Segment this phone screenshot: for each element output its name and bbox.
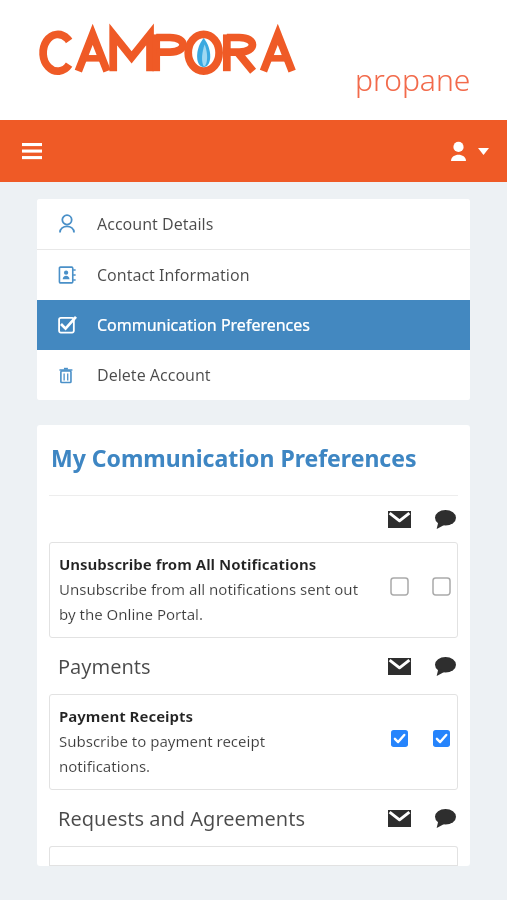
button[interactable]: Menu [10, 129, 54, 173]
staticText: Contact Information [97, 264, 250, 286]
button[interactable]: Text notifications [435, 657, 456, 676]
staticText: propane [355, 59, 471, 100]
staticText: My Communication Preferences [51, 442, 417, 473]
button[interactable]: Unsubscribe from All Notifications text [433, 578, 450, 595]
button[interactable]: Payment Receipts email [391, 730, 408, 747]
staticText: Communication Preferences [97, 314, 310, 336]
button[interactable]: Account Details [37, 199, 470, 249]
staticText: Requests and Agreements [58, 805, 305, 832]
button[interactable]: Contact Information [37, 250, 470, 300]
button[interactable]: Email notifications [388, 511, 411, 528]
button[interactable]: Text notifications [435, 510, 456, 529]
button[interactable]: Unsubscribe from All Notifications email [391, 578, 408, 595]
button[interactable]: Payment Receipts text [433, 730, 450, 747]
button[interactable]: Email notifications [388, 658, 411, 675]
staticText: Account Details [97, 213, 214, 235]
button[interactable]: Delete Account [37, 350, 470, 400]
staticText: Delete Account [97, 364, 211, 386]
button[interactable]: Text notifications [435, 809, 456, 828]
staticText: Unsubscribe from all notifications sent … [59, 579, 359, 624]
staticText: Payment Receipts [59, 706, 194, 726]
button[interactable]: Communication Preferences [37, 300, 470, 350]
staticText: Unsubscribe from All Notifications [59, 554, 317, 574]
staticText: Subscribe to payment receipt notificatio… [59, 731, 266, 776]
staticText: Payments [58, 653, 151, 680]
button[interactable]: Account menu [446, 134, 493, 169]
button[interactable]: Email notifications [388, 810, 411, 827]
